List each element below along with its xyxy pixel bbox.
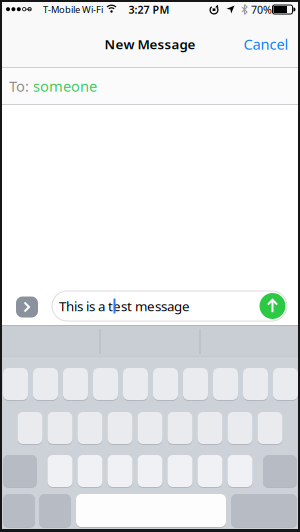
- button[interactable]: G: [137, 412, 162, 444]
- button[interactable]: C: [107, 455, 132, 487]
- button[interactable]: Message text field: [52, 291, 287, 321]
- button[interactable]: Send: [259, 293, 285, 319]
- button[interactable]: U: [183, 368, 208, 400]
- button[interactable]: N: [197, 455, 222, 487]
- button[interactable]: X: [77, 455, 102, 487]
- button[interactable]: W: [33, 368, 58, 400]
- button[interactable]: R: [93, 368, 118, 400]
- button[interactable]: App Store apps: [16, 296, 38, 317]
- button[interactable]: H: [167, 412, 192, 444]
- staticText: Cancel: [243, 34, 288, 54]
- staticText: This is a test message: [59, 297, 190, 315]
- button[interactable]: D: [77, 412, 102, 444]
- button[interactable]: T: [123, 368, 148, 400]
- staticText: T-Mobile Wi-Fi: [43, 3, 103, 16]
- button[interactable]: Cancel: [243, 34, 288, 54]
- staticText: 3:27 PM: [128, 2, 169, 17]
- button[interactable]: F: [107, 412, 132, 444]
- button[interactable]: M: [227, 455, 252, 487]
- button[interactable]: K: [227, 412, 252, 444]
- button[interactable]: P: [273, 368, 298, 400]
- staticText: someone: [33, 76, 97, 96]
- button[interactable]: A: [17, 412, 42, 444]
- button[interactable]: Y: [153, 368, 178, 400]
- staticText: New Message: [104, 35, 195, 53]
- button[interactable]: Z: [47, 455, 72, 487]
- staticText: To:: [9, 76, 29, 96]
- button[interactable]: Q: [3, 368, 28, 400]
- button[interactable]: I: [213, 368, 238, 400]
- button[interactable]: V: [137, 455, 162, 487]
- button[interactable]: B: [167, 455, 192, 487]
- button[interactable]: To:: [0, 68, 300, 104]
- button[interactable]: O: [243, 368, 268, 400]
- button[interactable]: L: [257, 412, 282, 444]
- staticText: 70%: [251, 2, 272, 17]
- button[interactable]: E: [63, 368, 88, 400]
- button[interactable]: Space: [76, 494, 226, 527]
- button[interactable]: S: [47, 412, 72, 444]
- button[interactable]: J: [197, 412, 222, 444]
